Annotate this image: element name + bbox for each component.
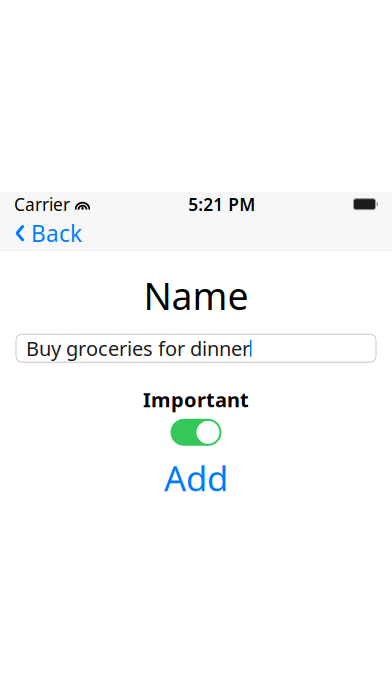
staticText: Carrier — [14, 193, 70, 216]
button[interactable]: Important — [170, 419, 221, 446]
staticText: 5:21 PM — [188, 193, 255, 216]
staticText: Important — [143, 386, 249, 413]
staticText: Add — [164, 455, 228, 501]
staticText: Buy groceries for dinner — [26, 335, 250, 362]
staticText: Name — [143, 271, 248, 320]
button[interactable]: Add — [136, 460, 256, 496]
button[interactable]: Back — [6, 216, 90, 250]
staticText: Back — [31, 218, 82, 248]
